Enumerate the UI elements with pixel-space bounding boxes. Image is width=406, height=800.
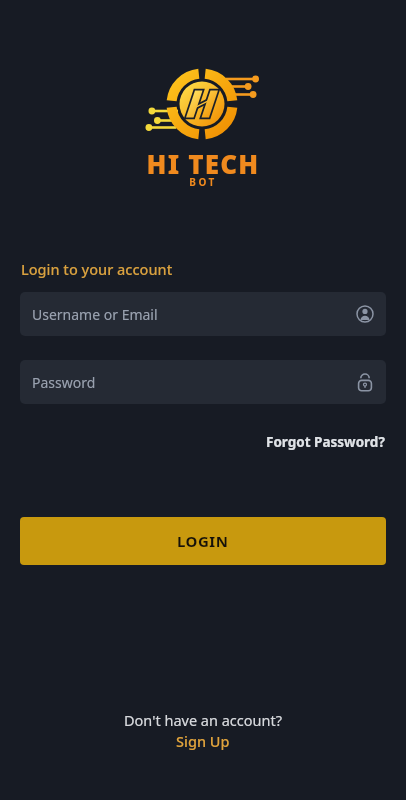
staticText: HI TECH — [0, 146, 406, 181]
button[interactable]: Forgot Password? — [266, 433, 385, 451]
staticText: Username or Email — [32, 305, 158, 324]
staticText: BOT — [0, 175, 406, 189]
button[interactable]: Username or Email — [20, 292, 386, 336]
button[interactable]: Sign Up — [176, 731, 230, 751]
staticText: Login to your account — [21, 259, 173, 279]
staticText: Password — [32, 373, 96, 392]
button[interactable]: LOGIN — [20, 517, 386, 565]
button[interactable]: Password — [20, 360, 386, 404]
staticText: Don't have an account? — [124, 710, 282, 730]
staticText: Sign Up — [176, 731, 230, 751]
staticText: Forgot Password? — [266, 433, 385, 451]
staticText: LOGIN — [177, 531, 229, 551]
